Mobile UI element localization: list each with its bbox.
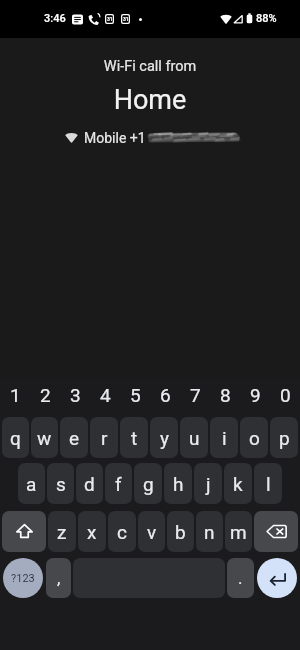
staticText: r: [101, 427, 108, 449]
button[interactable]: 2: [30, 378, 60, 411]
button[interactable]: h: [164, 463, 192, 504]
staticText: h: [173, 473, 184, 495]
button[interactable]: x: [78, 511, 106, 552]
staticText: Wi-Fi call from: [0, 58, 300, 75]
staticText: c: [117, 521, 127, 543]
button[interactable]: c: [108, 511, 136, 552]
button[interactable]: 3: [60, 378, 90, 411]
button[interactable]: 8: [210, 378, 240, 411]
staticText: y: [160, 427, 169, 449]
staticText: 31: [107, 16, 113, 22]
staticText: 4: [100, 384, 111, 406]
button[interactable]: v: [138, 511, 165, 552]
staticText: w: [37, 427, 52, 449]
button[interactable]: y: [150, 417, 178, 458]
button[interactable]: o: [240, 417, 268, 458]
staticText: q: [10, 427, 21, 449]
staticText: ,: [57, 568, 61, 588]
staticText: 3: [70, 384, 81, 406]
staticText: i: [222, 427, 227, 449]
button[interactable]: d: [76, 463, 103, 504]
staticText: 7: [190, 384, 201, 406]
staticText: b: [175, 521, 186, 543]
staticText: 3:46: [44, 12, 66, 25]
button[interactable]: 6: [150, 378, 180, 411]
button[interactable]: 5: [120, 378, 150, 411]
button[interactable]: g: [134, 463, 162, 504]
staticText: l: [266, 473, 271, 495]
staticText: .: [238, 568, 243, 588]
button[interactable]: t: [120, 417, 148, 458]
staticText: Mobile +1: [84, 130, 146, 146]
button[interactable]: z: [48, 511, 76, 552]
staticText: 88%: [256, 12, 277, 25]
staticText: o: [249, 427, 260, 449]
button[interactable]: .: [227, 558, 254, 598]
staticText: 1: [10, 384, 21, 406]
button[interactable]: e: [60, 417, 88, 458]
staticText: z: [57, 521, 67, 543]
button[interactable]: i: [210, 417, 238, 458]
button[interactable]: n: [196, 511, 223, 552]
button[interactable]: r: [90, 417, 118, 458]
button[interactable]: l: [254, 463, 282, 504]
button[interactable]: k: [224, 463, 252, 504]
staticText: 0: [280, 384, 291, 406]
button[interactable]: b: [167, 511, 194, 552]
staticText: t: [131, 427, 138, 449]
staticText: 9: [250, 384, 261, 406]
button[interactable]: 1: [0, 378, 30, 411]
button[interactable]: 9: [240, 378, 270, 411]
staticText: 6: [160, 384, 171, 406]
staticText: d: [84, 473, 95, 495]
button[interactable]: j: [194, 463, 222, 504]
button[interactable]: Backspace: [254, 511, 298, 552]
button[interactable]: 7: [180, 378, 210, 411]
staticText: s: [56, 473, 66, 495]
staticText: 8: [220, 384, 231, 406]
button[interactable]: Enter: [257, 558, 297, 598]
staticText: x: [87, 521, 97, 543]
button[interactable]: Shift: [2, 511, 46, 552]
staticText: 31: [123, 16, 129, 22]
staticText: v: [147, 521, 157, 543]
staticText: 2: [40, 384, 51, 406]
button[interactable]: q: [2, 417, 29, 458]
button[interactable]: p: [270, 417, 298, 458]
staticText: k: [233, 473, 243, 495]
staticText: f: [115, 473, 122, 495]
staticText: Home: [0, 84, 300, 116]
staticText: n: [204, 521, 215, 543]
button[interactable]: a: [18, 463, 45, 504]
staticText: g: [143, 473, 154, 495]
staticText: u: [189, 427, 200, 449]
staticText: a: [26, 473, 37, 495]
button[interactable]: 4: [90, 378, 120, 411]
staticText: ?123: [11, 572, 35, 585]
button[interactable]: u: [180, 417, 208, 458]
staticText: p: [279, 427, 290, 449]
button[interactable]: f: [105, 463, 132, 504]
button[interactable]: s: [47, 463, 74, 504]
button[interactable]: ,: [46, 558, 71, 598]
staticText: m: [230, 521, 247, 543]
button[interactable]: 0: [270, 378, 300, 411]
staticText: j: [206, 473, 211, 495]
button[interactable]: w: [31, 417, 58, 458]
button[interactable]: ?123: [3, 558, 43, 598]
staticText: e: [69, 427, 80, 449]
staticText: 5: [130, 384, 141, 406]
button[interactable]: m: [225, 511, 252, 552]
